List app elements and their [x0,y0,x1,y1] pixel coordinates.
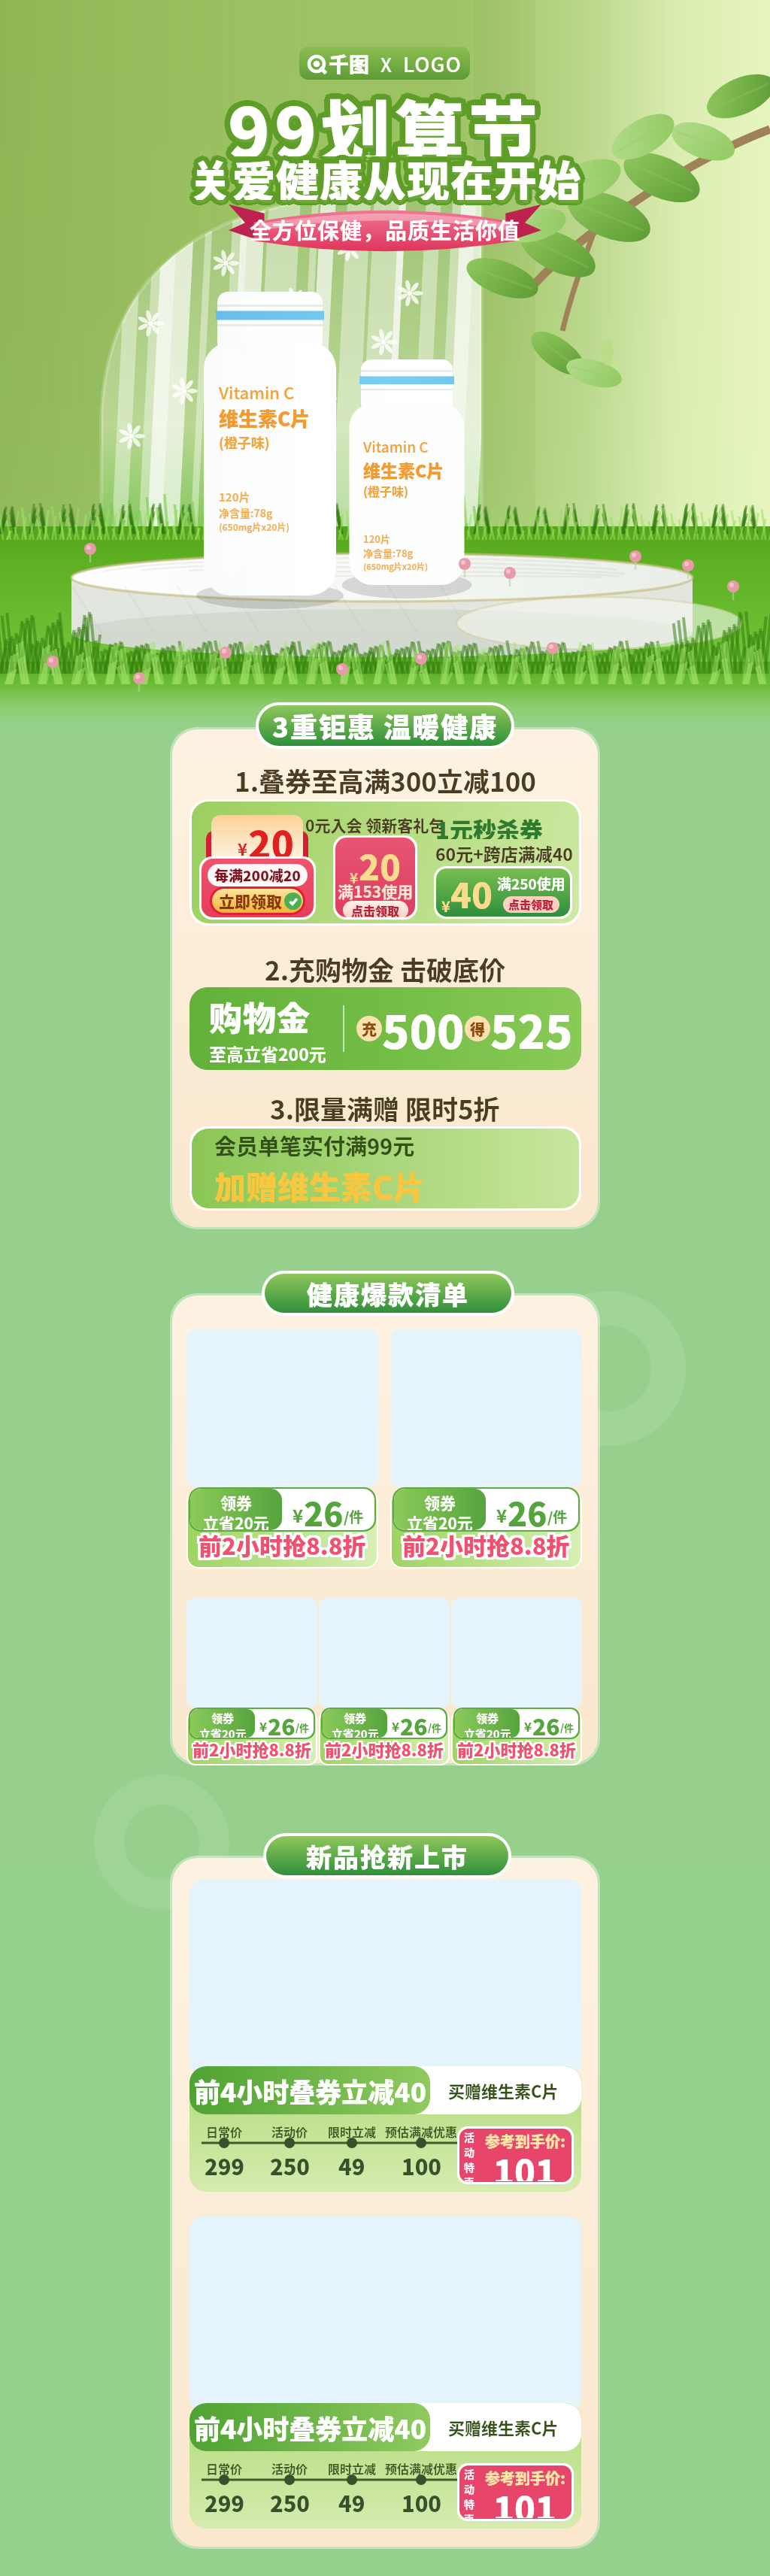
staticText: 299 [205,2487,244,2518]
staticText: (650mg片x20片) [363,560,429,572]
staticText: 前4小时叠券立减40 [194,2071,426,2110]
staticText: 1.叠券至高满300立减100 [235,761,536,797]
staticText: 前2小时抢8.8折 [201,1528,368,1562]
staticText: 立省20元 [464,1726,511,1738]
staticText: 关爱健康从现在开始 [184,150,577,202]
staticText: 99划算节 [228,84,543,162]
button[interactable]: 前2小时抢8.8折 [186,1598,317,1765]
button[interactable]: 活 [459,2465,571,2519]
staticText: 净含量:78g [363,546,414,560]
staticText: ¥ [350,867,359,888]
staticText: 99划算节 [228,78,543,156]
staticText: 关爱健康从现在开始 [193,145,586,198]
staticText: 前2小时抢8.8折 [456,1735,574,1759]
button[interactable]: ¥ [335,838,415,917]
button[interactable]: 点击领取 [351,902,400,917]
staticText: 关爱健康从现在开始 [193,150,586,202]
staticText: 关爱健康从现在开始 [186,143,579,195]
staticText: 参考到手价: [485,2467,566,2489]
staticText: 500 [382,996,465,1062]
button[interactable]: 立即领取 [219,889,302,912]
staticText: 前2小时抢8.8折 [196,1528,364,1562]
staticText: 预估满减优惠 [385,2459,458,2477]
button[interactable]: 前2小时抢8.8折 [319,1598,450,1765]
staticText: /件 [344,1506,364,1527]
staticText: 关爱健康从现在开始 [192,151,585,204]
staticText: 26 [508,1489,547,1530]
staticText: 领券 [344,1710,367,1726]
button[interactable]: 健康爆款清单 [265,1274,511,1313]
button[interactable]: 3重钜惠 温暖健康 [259,705,511,746]
staticText: 前2小时抢8.8折 [323,1737,442,1761]
staticText: 前2小时抢8.8折 [199,1526,366,1559]
staticText: 领券 [220,1491,252,1514]
staticText: 99划算节 [233,76,548,154]
staticText: 得 [470,1018,485,1040]
staticText: 前2小时抢8.8折 [194,1735,313,1759]
button[interactable]: ¥ [436,868,570,917]
staticText: 99划算节 [232,83,547,161]
button[interactable]: 每满200减20 [202,859,314,917]
staticText: 前2小时抢8.8折 [457,1738,576,1762]
staticText: 满250使用 [497,873,565,894]
staticText: 点击领取 [351,902,400,917]
staticText: 维生素C片 [363,457,444,482]
staticText: 健康爆款清单 [307,1275,469,1312]
staticText: 99划算节 [230,83,545,162]
staticText: Vitamin C [219,380,295,404]
staticText: ¥ [293,1502,304,1528]
staticText: 参考到手价: [485,2130,566,2152]
staticText: 前2小时抢8.8折 [405,1526,572,1559]
staticText: 前2小时抢8.8折 [326,1735,445,1759]
button[interactable]: 会员单笔实付满99元 [192,1129,579,1208]
staticText: 立省20元 [199,1726,247,1738]
staticText: 前2小时抢8.8折 [459,1738,577,1762]
staticText: 关爱健康从现在开始 [191,143,584,195]
staticText: 充 [362,1018,377,1040]
staticText: 动 [464,2144,474,2159]
button[interactable] [189,2217,581,2411]
staticText: 千图 [329,49,369,78]
staticText: X [380,50,392,77]
staticText: /件 [296,1720,310,1735]
staticText: ¥ [392,1717,400,1735]
staticText: ¥ [238,836,247,860]
staticText: 关爱健康从现在开始 [190,150,583,203]
staticText: 净含量:78g [219,505,273,520]
staticText: 惠 [464,2174,474,2182]
button[interactable]: 活 [459,2129,571,2182]
staticText: 99划算节 [226,83,541,162]
staticText: 领券 [424,1491,456,1514]
staticText: 前2小时抢8.8折 [192,1738,311,1762]
button[interactable]: 前2小时抢8.8折 [451,1598,582,1765]
staticText: (橙子味) [219,432,270,452]
staticText: 关爱健康从现在开始 [186,152,579,205]
button[interactable]: 买赠维生素C片 [189,2403,581,2529]
staticText: 525 [490,996,573,1062]
staticText: 全方位保健，品质生活你值 [250,214,521,245]
button[interactable]: 购物金 [189,987,581,1070]
staticText: 120片 [363,532,391,546]
staticText: 250 [270,2150,310,2181]
button[interactable]: 前2小时抢8.8折 [186,1329,378,1568]
button[interactable]: 千图 logo [299,47,470,80]
button[interactable] [189,1880,581,2074]
staticText: 关爱健康从现在开始 [194,147,587,200]
staticText: 前2小时抢8.8折 [199,1528,366,1562]
other: 已选中 [284,893,302,910]
staticText: ¥ [524,1717,532,1735]
staticText: 3重钜惠 温暖健康 [272,706,499,745]
staticText: 26 [268,1709,296,1738]
staticText: 99划算节 [223,83,538,161]
staticText: 99划算节 [233,80,548,159]
staticText: 前2小时抢8.8折 [201,1526,368,1559]
button[interactable]: 买赠维生素C片 [189,2066,581,2192]
button[interactable]: 前2小时抢8.8折 [390,1329,582,1568]
staticText: 点击领取 [508,896,554,913]
staticText: 99划算节 [229,81,544,159]
staticText: 前2小时抢8.8折 [405,1528,572,1562]
button[interactable]: 新品抢新上市 [266,1836,508,1875]
staticText: LOGO [403,49,462,78]
staticText: 2.充购物金 击破底价 [265,950,505,986]
staticText: 99划算节 [230,73,545,151]
